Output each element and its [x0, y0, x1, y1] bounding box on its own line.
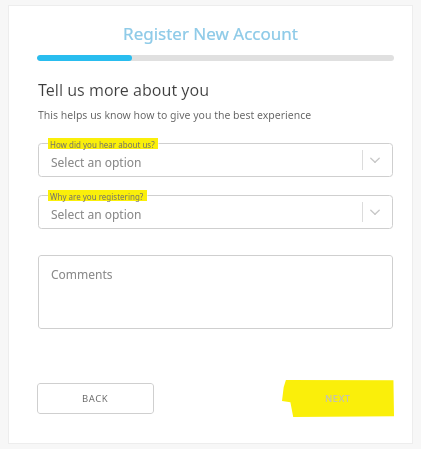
button[interactable]: Why are you registering? [38, 195, 393, 229]
button[interactable]: Comments [38, 255, 393, 329]
staticText: Register New Account [8, 22, 413, 45]
staticText: How did you hear about us? [50, 139, 155, 150]
button[interactable]: Open dropdown [363, 200, 387, 224]
staticText: Comments [51, 266, 113, 282]
staticText: Tell us more about you [38, 79, 210, 101]
staticText: Select an option [51, 154, 142, 170]
staticText: Why are you registering? [50, 191, 144, 202]
button[interactable]: How did you hear about us? [38, 143, 393, 177]
staticText: This helps us know how to give you the b… [38, 108, 312, 122]
staticText: Select an option [51, 206, 142, 222]
staticText: BACK [82, 392, 109, 405]
staticText: NEXT [325, 392, 351, 405]
button[interactable]: NEXT [282, 383, 394, 414]
button[interactable]: BACK [37, 383, 154, 414]
button[interactable]: Open dropdown [363, 148, 387, 172]
